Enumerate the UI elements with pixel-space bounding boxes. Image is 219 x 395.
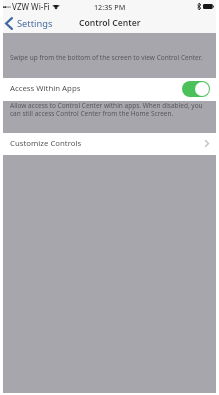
- staticText: 12:35 PM: [94, 2, 126, 12]
- staticText: Swipe up from the bottom of the screen t…: [10, 53, 203, 62]
- button[interactable]: Settings: [3, 17, 57, 30]
- button[interactable]: Access Within Apps: [3, 78, 216, 101]
- staticText: Customize Controls: [10, 138, 82, 149]
- staticText: Control Center: [79, 17, 141, 29]
- staticText: Allow access to Control Center within ap…: [10, 101, 203, 118]
- staticText: Access Within Apps: [10, 83, 81, 94]
- button[interactable]: Access Within Apps toggle: [182, 81, 210, 97]
- button[interactable]: Customize Controls: [3, 133, 216, 155]
- staticText: VZW Wi-Fi: [12, 1, 50, 12]
- staticText: Settings: [17, 17, 53, 30]
